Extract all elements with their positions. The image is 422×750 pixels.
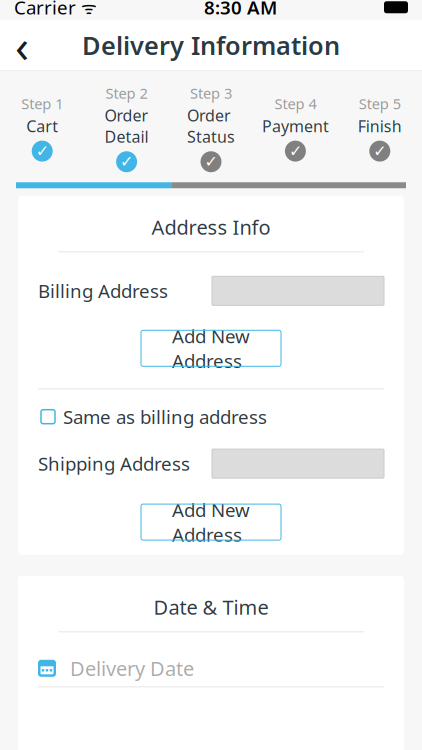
staticText: Billing Address	[38, 278, 168, 303]
staticText: 8:30 AM	[204, 0, 277, 20]
button[interactable]: Back	[0, 23, 44, 67]
button[interactable]: Delivery Date	[18, 650, 404, 687]
staticText: Step 2	[106, 83, 148, 103]
staticText: Delivery Date	[70, 655, 194, 682]
button[interactable]: Add New Address	[141, 504, 281, 540]
staticText: Carrier	[14, 0, 76, 20]
staticText: ✓	[204, 153, 217, 171]
staticText: Step 1	[21, 94, 63, 113]
staticText: Order Detail	[105, 105, 149, 147]
staticText: ᯤ	[76, 0, 97, 19]
staticText: Add New Address	[172, 497, 250, 547]
staticText: Date & Time	[153, 594, 268, 620]
button[interactable]: Add New Address	[141, 330, 281, 366]
staticText: Finish	[358, 115, 402, 137]
staticText: Order Status	[187, 105, 235, 147]
staticText: Address Info	[151, 214, 270, 240]
staticText: Step 4	[274, 94, 316, 113]
staticText: ✓	[36, 142, 49, 160]
staticText: Same as billing address	[63, 404, 267, 429]
staticText: Payment	[262, 115, 329, 137]
staticText: Add New Address	[172, 323, 250, 373]
staticText: Delivery Information	[82, 28, 340, 62]
staticText: ✓	[120, 153, 133, 171]
staticText: Shipping Address	[38, 451, 190, 476]
staticText: Step 5	[359, 94, 401, 113]
staticText: ‹	[15, 15, 29, 75]
staticText: ✓	[289, 142, 302, 160]
staticText: Step 3	[190, 83, 232, 103]
button[interactable]: Same as billing address	[41, 410, 55, 424]
staticText: ✓	[373, 142, 386, 160]
staticText: Cart	[26, 115, 58, 137]
